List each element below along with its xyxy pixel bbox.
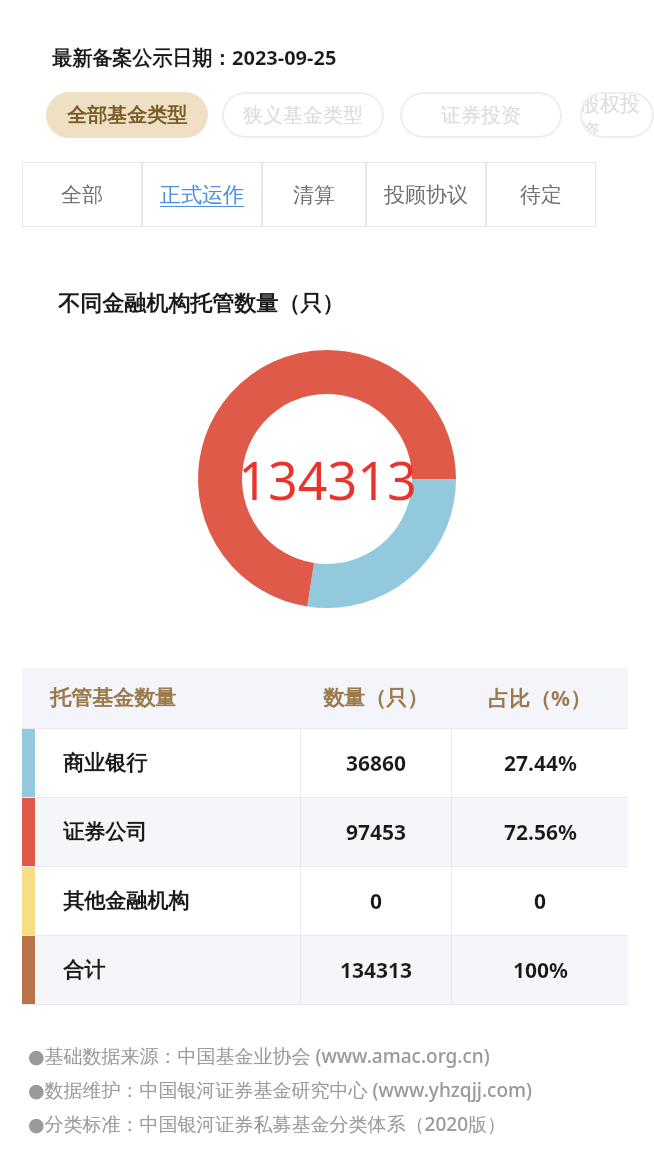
staticText: ●分类标准：中国银河证券私募基金分类体系（2020版） [28, 1111, 507, 1137]
button[interactable]: 清算 [262, 162, 366, 227]
staticText: ●数据维护：中国银河证券基金研究中心 (www.yhzqjj.com) [28, 1077, 532, 1103]
staticText: 不同金融机构托管数量（只） [58, 290, 344, 318]
staticText: 合计 [63, 957, 105, 983]
staticText: 狭义基金类型 [243, 103, 363, 128]
staticText: 正式运作 [160, 182, 244, 208]
staticText: 证券公司 [63, 819, 147, 845]
staticText: 投顾协议 [384, 182, 468, 208]
staticText: 0 [370, 887, 383, 916]
staticText: 待定 [520, 182, 562, 208]
staticText: 股权投资 [580, 92, 654, 138]
staticText: 证券投资 [441, 103, 521, 128]
button[interactable]: 全部基金类型 [46, 92, 208, 138]
staticText: 其他金融机构 [63, 888, 189, 914]
staticText: 100% [513, 956, 568, 985]
staticText: 清算 [293, 182, 335, 208]
staticText: 商业银行 [63, 750, 147, 776]
button[interactable]: 全部 [22, 162, 142, 227]
button[interactable]: 狭义基金类型 [222, 92, 384, 138]
staticText: 97453 [346, 818, 407, 847]
staticText: 72.56% [504, 818, 577, 847]
staticText: ●基础数据来源：中国基金业协会 (www.amac.org.cn) [28, 1043, 490, 1069]
staticText: 全部 [61, 182, 103, 208]
button[interactable]: 待定 [486, 162, 596, 227]
staticText: 托管基金数量 [50, 685, 176, 711]
staticText: 占比（%） [488, 684, 591, 713]
button[interactable]: 投顾协议 [366, 162, 486, 227]
staticText: 最新备案公示日期：2023-09-25 [52, 44, 337, 71]
button[interactable]: 股权投资 [580, 92, 654, 138]
staticText: 134313 [340, 956, 413, 985]
button[interactable]: 正式运作 [142, 162, 262, 227]
staticText: 27.44% [504, 749, 577, 778]
button[interactable]: 证券公司 [22, 798, 628, 866]
staticText: 134313 [238, 444, 417, 515]
staticText: 数量（只） [323, 685, 428, 711]
button[interactable]: 商业银行 [22, 729, 628, 797]
button[interactable]: 合计 [22, 936, 628, 1004]
staticText: 0 [534, 887, 547, 916]
staticText: 36860 [346, 749, 407, 778]
staticText: 全部基金类型 [67, 103, 187, 128]
button[interactable]: 其他金融机构 [22, 867, 628, 935]
button[interactable]: 证券投资 [400, 92, 562, 138]
